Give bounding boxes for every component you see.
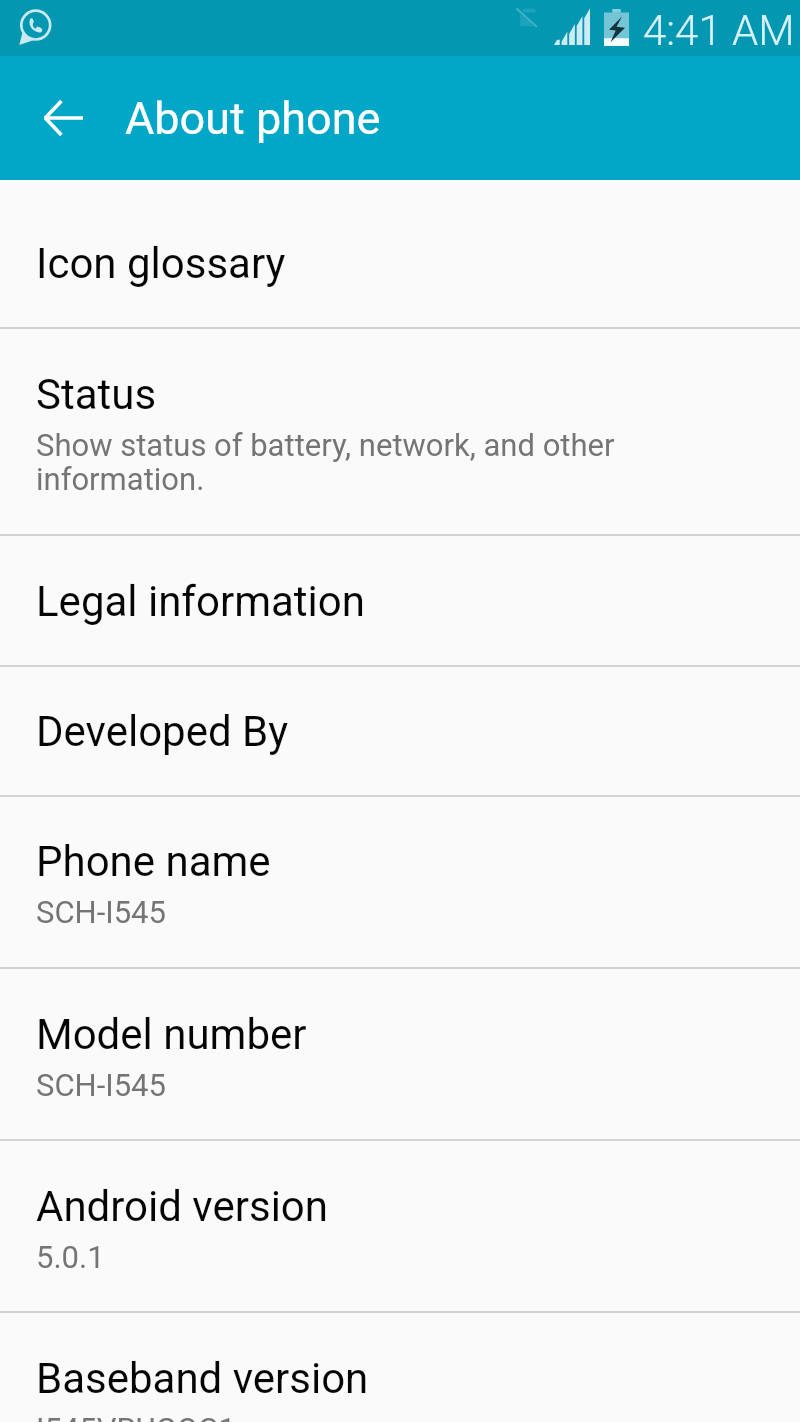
staticText: Android version — [36, 1182, 328, 1231]
staticText: About phone — [125, 92, 381, 145]
staticText: Status — [36, 370, 157, 419]
staticText: I545VRUGOC1 — [36, 1411, 236, 1422]
button[interactable]: Phone name — [0, 797, 800, 967]
button[interactable]: Navigate up — [27, 82, 99, 154]
button[interactable]: Legal information — [0, 536, 800, 665]
staticText: 4:41 AM — [643, 6, 795, 55]
button[interactable]: Model number — [0, 969, 800, 1139]
staticText: SCH-I545 — [36, 894, 166, 930]
other: Silent mode — [516, 8, 537, 27]
other: Battery charging — [604, 9, 629, 46]
button[interactable]: Developed By — [0, 667, 800, 795]
staticText: Icon glossary — [36, 239, 286, 288]
button[interactable]: Icon glossary — [0, 180, 800, 327]
button[interactable]: Status — [0, 329, 800, 534]
staticText: Phone name — [36, 837, 271, 886]
staticText: Legal information — [36, 577, 365, 626]
staticText: 5.0.1 — [36, 1239, 105, 1275]
button[interactable]: Android version — [0, 1141, 800, 1311]
staticText: Show status of battery, network, and oth… — [36, 427, 770, 497]
button[interactable]: Baseband version — [0, 1313, 800, 1422]
staticText: Model number — [36, 1010, 307, 1059]
other: Signal strength — [554, 8, 590, 45]
other: WhatsApp notification — [17, 10, 53, 46]
staticText: SCH-I545 — [36, 1067, 166, 1103]
staticText: Developed By — [36, 707, 289, 756]
staticText: Baseband version — [36, 1354, 369, 1403]
